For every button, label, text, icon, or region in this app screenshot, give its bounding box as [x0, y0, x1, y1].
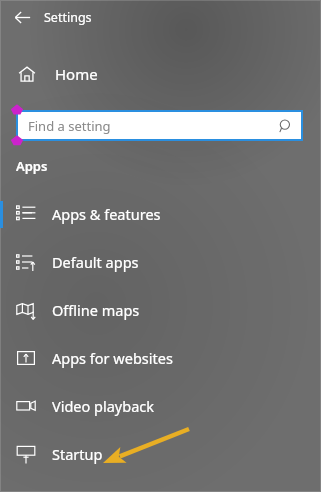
staticText: Default apps	[52, 252, 139, 272]
button[interactable]: Find a setting	[16, 110, 303, 141]
staticText: Offline maps	[52, 300, 140, 320]
staticText: Settings	[44, 9, 92, 26]
button[interactable]: Offline maps	[0, 286, 321, 334]
button[interactable]: Startup	[0, 430, 321, 478]
button[interactable]: Back	[0, 0, 44, 34]
button[interactable]: Home	[0, 55, 321, 93]
staticText: Apps & features	[52, 204, 161, 224]
staticText: Apps for websites	[52, 348, 173, 368]
button[interactable]: Apps for websites	[0, 334, 321, 382]
staticText: Find a setting	[28, 117, 111, 135]
staticText: Apps	[16, 157, 48, 175]
button[interactable]: Apps & features	[0, 190, 321, 238]
staticText: Video playback	[52, 396, 155, 416]
button[interactable]: Default apps	[0, 238, 321, 286]
staticText: Startup	[52, 444, 103, 464]
button[interactable]: Video playback	[0, 382, 321, 430]
staticText: Home	[55, 64, 98, 84]
